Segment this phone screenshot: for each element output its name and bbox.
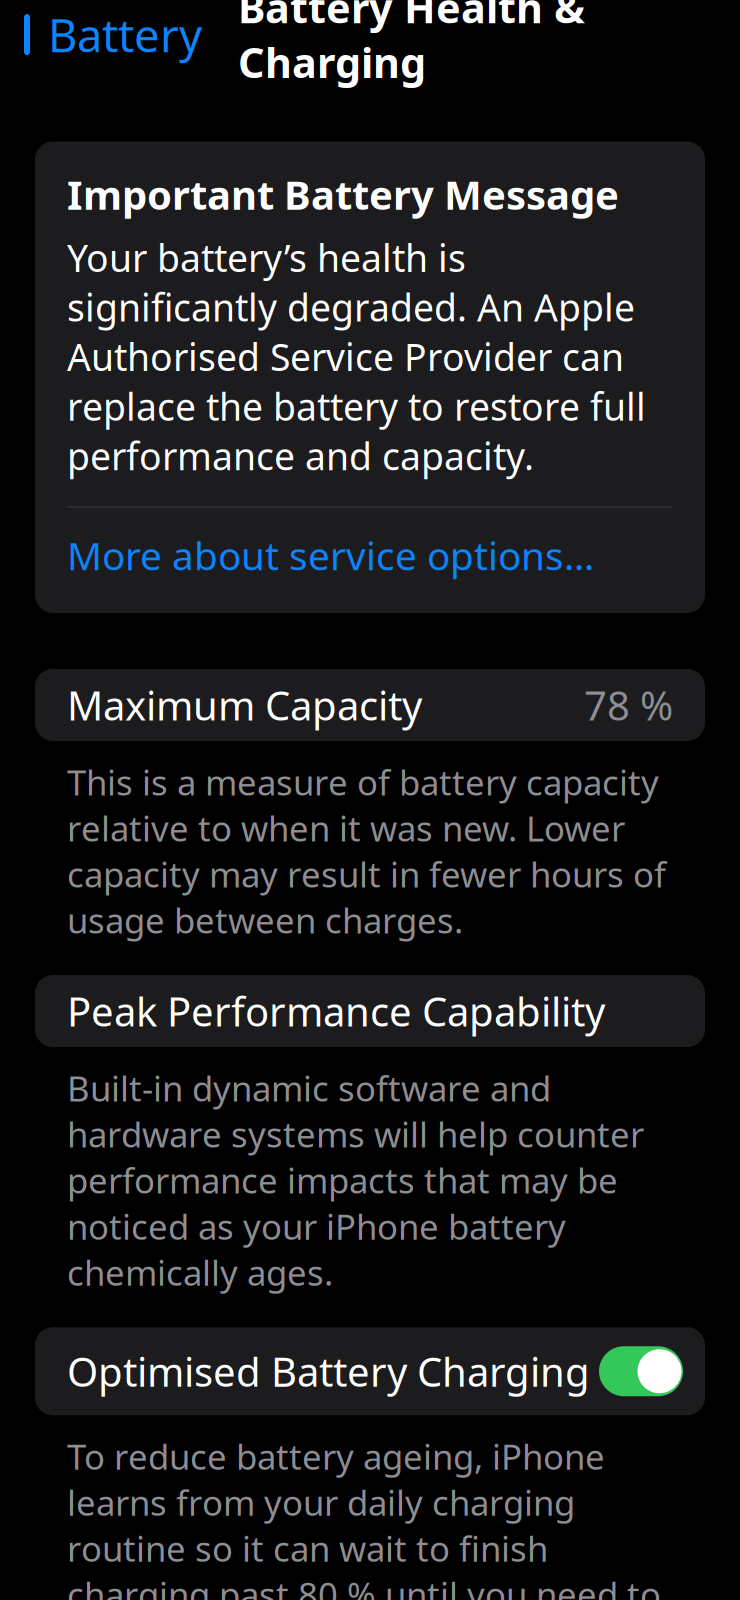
staticText: Your battery’s health is significantly d… bbox=[67, 233, 646, 481]
staticText: Peak Performance Capability bbox=[67, 984, 605, 1038]
button[interactable]: More about service options... bbox=[67, 508, 673, 587]
staticText: 78 % bbox=[584, 678, 673, 731]
staticText: This is a measure of battery capacity re… bbox=[67, 759, 666, 943]
staticText: Battery Health & Charging bbox=[238, 0, 585, 89]
button[interactable]: Battery bbox=[0, 0, 202, 73]
button[interactable]: Optimised Battery Charging bbox=[35, 1327, 705, 1415]
button[interactable]: Peak Performance Capability bbox=[35, 975, 705, 1047]
staticText: Built-in dynamic software and hardware s… bbox=[67, 1065, 644, 1295]
staticText: More about service options... bbox=[67, 530, 594, 581]
staticText: To reduce battery ageing, iPhone learns … bbox=[67, 1433, 661, 1600]
staticText: Maximum Capacity bbox=[67, 678, 422, 731]
staticText: Battery bbox=[48, 4, 202, 65]
staticText: Important Battery Message bbox=[67, 168, 619, 221]
button[interactable]: Maximum Capacity bbox=[35, 669, 705, 741]
staticText: Optimised Battery Charging bbox=[67, 1345, 590, 1398]
